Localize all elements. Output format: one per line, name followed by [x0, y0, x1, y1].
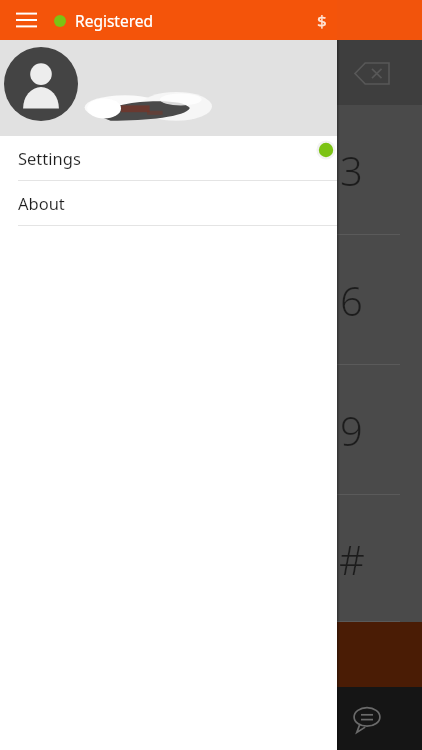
button[interactable]: 6 [281, 235, 422, 365]
button[interactable]: 1 [0, 105, 140, 235]
button[interactable]: 2 [140, 105, 281, 235]
staticText: 2 [199, 143, 222, 197]
staticText: # [339, 532, 365, 586]
staticText: Settings [18, 147, 81, 169]
button[interactable]: 3 [281, 105, 422, 235]
button[interactable]: Messages [345, 697, 389, 741]
button[interactable]: About [0, 181, 337, 226]
button[interactable]: # [281, 495, 422, 622]
staticText: About [18, 192, 65, 214]
staticText: 1 [59, 143, 82, 197]
staticText: 9 [340, 403, 363, 457]
staticText: 6 [340, 273, 363, 327]
button[interactable]: Registered [54, 10, 154, 31]
button[interactable]: Open navigation drawer [6, 0, 46, 40]
button[interactable]: Call [0, 622, 422, 687]
staticText: Registered [75, 10, 154, 31]
button[interactable]: Balance [302, 0, 342, 40]
staticText: $ [317, 9, 327, 32]
button[interactable]: Backspace [350, 51, 394, 95]
button[interactable]: Settings [0, 136, 337, 181]
staticText: 3 [340, 143, 363, 197]
button[interactable]: 9 [281, 365, 422, 495]
button[interactable] [0, 40, 337, 136]
